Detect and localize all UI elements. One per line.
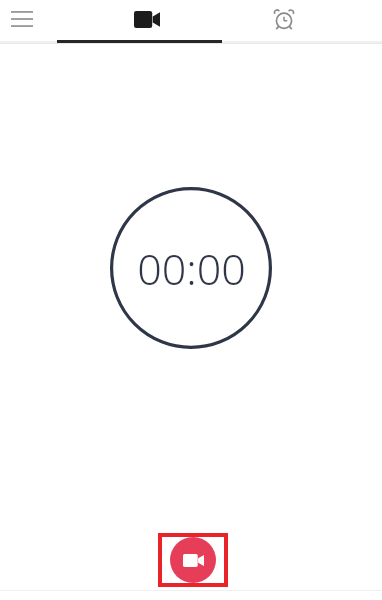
- button[interactable]: Menu: [0, 0, 44, 38]
- button[interactable]: Video: [120, 0, 174, 38]
- button[interactable]: Alarm: [257, 0, 311, 38]
- staticText: 00:00: [137, 239, 246, 298]
- button[interactable]: Start recording: [170, 537, 216, 583]
